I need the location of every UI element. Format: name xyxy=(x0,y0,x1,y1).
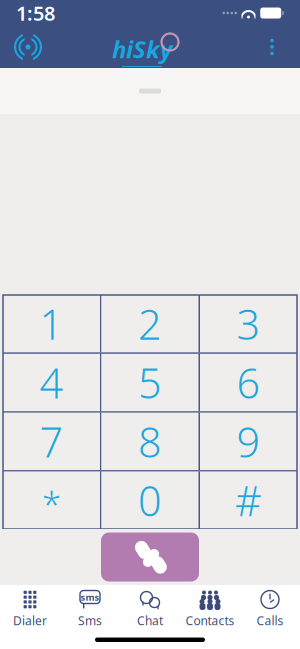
button[interactable]: Chat xyxy=(120,585,180,632)
staticText: 7 xyxy=(39,414,63,469)
button[interactable]: sms xyxy=(60,585,120,632)
staticText: 3 xyxy=(236,296,260,351)
staticText: 4 xyxy=(39,355,63,410)
staticText: 1 xyxy=(39,296,63,351)
button[interactable]: Network status xyxy=(6,27,50,67)
button[interactable]: # xyxy=(200,472,297,529)
staticText: 9 xyxy=(236,414,260,469)
button[interactable]: Call xyxy=(101,532,199,581)
button[interactable]: 7 xyxy=(3,413,100,470)
button[interactable]: 0 xyxy=(101,472,198,529)
staticText: sms xyxy=(80,591,99,603)
staticText: 1:58 xyxy=(16,0,55,26)
button[interactable]: More options xyxy=(250,27,294,67)
button[interactable]: 6 xyxy=(200,354,297,411)
staticText: 2 xyxy=(138,296,162,351)
staticText: Contacts xyxy=(185,612,234,628)
button[interactable]: 2 xyxy=(101,295,198,352)
button[interactable]: Calls xyxy=(240,585,300,632)
staticText: hiSky xyxy=(112,33,172,65)
staticText: 6 xyxy=(236,355,260,410)
button[interactable]: 3 xyxy=(200,295,297,352)
button[interactable]: 1 xyxy=(3,295,100,352)
staticText: 8 xyxy=(138,414,162,469)
button[interactable]: 9 xyxy=(200,413,297,470)
button[interactable]: 8 xyxy=(101,413,198,470)
button[interactable]: * xyxy=(3,472,100,529)
staticText: Calls xyxy=(256,612,283,628)
staticText: Sms xyxy=(78,612,102,628)
staticText: * xyxy=(42,481,61,527)
staticText: 5 xyxy=(138,355,162,410)
staticText: # xyxy=(235,473,262,528)
button[interactable]: Dialer xyxy=(0,585,60,632)
button[interactable]: 4 xyxy=(3,354,100,411)
staticText: Chat xyxy=(137,612,163,628)
button[interactable]: 5 xyxy=(101,354,198,411)
button[interactable]: Contacts xyxy=(180,585,240,632)
staticText: 0 xyxy=(138,473,162,528)
staticText: Dialer xyxy=(13,612,47,628)
